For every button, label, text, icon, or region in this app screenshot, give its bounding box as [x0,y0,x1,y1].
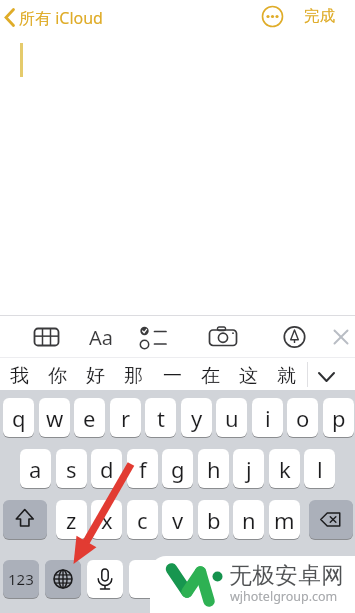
staticText: Aa [89,324,113,351]
staticText: 无极安卓网 [229,561,344,589]
staticText: x [101,505,113,535]
staticText: 就 [277,364,296,388]
staticText: 在 [201,364,220,388]
staticText: g [171,454,185,484]
staticText: e [83,403,96,433]
staticText: 那 [124,364,143,388]
staticText: m [274,505,295,535]
staticText: f [139,454,147,484]
staticText: 完成 [304,6,335,26]
staticText: n [242,505,256,535]
staticText: 一 [163,364,182,388]
staticText: 所有 iCloud [19,7,103,29]
staticText: 这 [239,364,258,388]
staticText: d [100,454,114,484]
staticText: b [207,505,221,535]
staticText: j [246,454,252,484]
staticText: p [332,403,346,433]
staticText: r [121,403,131,433]
staticText: k [279,454,291,484]
staticText: a [29,454,42,484]
staticText: w [46,403,64,433]
staticText: 你 [48,364,67,388]
staticText: 我 [10,364,29,388]
staticText: 123 [8,569,34,589]
staticText: i [265,403,271,433]
staticText: q [12,403,26,433]
staticText: t [157,403,165,433]
staticText: v [172,505,184,535]
staticText: wjhotelgroup.com [230,588,338,605]
staticText: c [137,505,148,535]
staticText: z [66,505,77,535]
staticText: 好 [86,364,105,388]
staticText: s [66,454,77,484]
staticText: l [317,454,323,484]
staticText: u [225,403,239,433]
staticText: y [191,403,203,433]
staticText: o [296,403,310,433]
staticText: h [207,454,221,484]
